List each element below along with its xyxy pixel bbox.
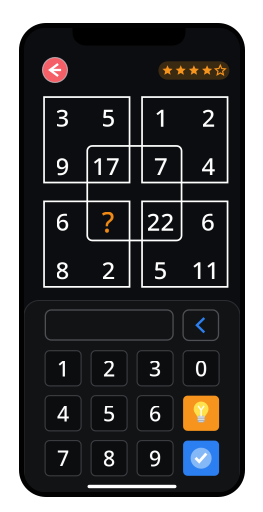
staticText: 2	[103, 354, 115, 382]
staticText: 6	[149, 399, 161, 427]
button[interactable]: Rating: 4 of 5 stars	[158, 61, 229, 80]
button[interactable]: 6	[137, 396, 173, 431]
staticText: 8	[55, 254, 69, 286]
staticText: 4	[201, 150, 215, 182]
staticText: 2	[201, 102, 215, 133]
staticText: 3	[149, 354, 161, 382]
button[interactable]: Confirm	[183, 441, 219, 476]
staticText: 5	[153, 254, 167, 286]
staticText: 6	[201, 206, 215, 237]
staticText: 7	[57, 444, 69, 472]
button[interactable]: 5	[91, 396, 127, 431]
staticText: 8	[103, 444, 115, 472]
staticText: 9	[55, 150, 69, 182]
staticText: 3	[55, 102, 69, 133]
button[interactable]: 2	[91, 351, 127, 386]
staticText: 7	[154, 150, 168, 182]
button[interactable]: 1	[45, 351, 81, 386]
staticText: ?	[102, 203, 115, 241]
staticText: 2	[101, 254, 115, 286]
staticText: 22	[146, 206, 174, 237]
staticText: 11	[191, 254, 219, 286]
staticText: 1	[57, 354, 69, 382]
button[interactable]: Back	[42, 57, 67, 82]
staticText: 5	[101, 102, 115, 133]
staticText: 17	[92, 150, 120, 182]
button[interactable]: 7	[45, 441, 81, 476]
button[interactable]: 4	[45, 396, 81, 431]
staticText: 0	[195, 354, 207, 382]
button[interactable]: 8	[91, 441, 127, 476]
staticText: 5	[103, 399, 115, 427]
button[interactable]: Delete	[183, 310, 218, 340]
button[interactable]: Hint	[183, 396, 219, 431]
button[interactable]: 9	[137, 441, 173, 476]
staticText: 6	[55, 206, 69, 237]
staticText: 4	[57, 399, 69, 427]
staticText: 1	[154, 102, 168, 133]
button[interactable]: 3	[137, 351, 173, 386]
staticText: 9	[149, 444, 161, 472]
button[interactable]: 0	[183, 351, 219, 386]
